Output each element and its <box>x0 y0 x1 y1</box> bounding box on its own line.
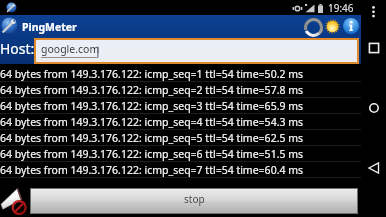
button[interactable]: Mute <box>1 186 27 212</box>
staticText: google.com <box>41 42 100 56</box>
button[interactable]: Recents <box>367 41 381 55</box>
button[interactable]: 64 bytes from 149.3.176.122: icmp_seq=7 … <box>0 162 361 177</box>
staticText: stop <box>184 192 205 206</box>
button[interactable]: 64 bytes from 149.3.176.122: icmp_seq=3 … <box>0 98 361 113</box>
button[interactable]: 64 bytes from 149.3.176.122: icmp_seq=6 … <box>0 146 361 161</box>
staticText: 64 bytes from 149.3.176.122: icmp_seq=4 … <box>0 115 304 129</box>
button[interactable]: 64 bytes from 149.3.176.122: icmp_seq=5 … <box>0 130 361 145</box>
staticText: 64 bytes from 149.3.176.122: icmp_seq=5 … <box>0 131 304 145</box>
staticText: 64 bytes from 149.3.176.122: icmp_seq=6 … <box>0 147 304 161</box>
button[interactable]: google.com <box>36 40 357 62</box>
staticText: 64 bytes from 149.3.176.122: icmp_seq=2 … <box>0 83 304 97</box>
button[interactable]: More options <box>367 4 380 17</box>
staticText: 64 bytes from 149.3.176.122: icmp_seq=3 … <box>0 99 304 113</box>
button[interactable]: 64 bytes from 149.3.176.122: icmp_seq=1 … <box>0 66 361 81</box>
button[interactable]: About <box>341 16 361 36</box>
staticText: 19:46 <box>328 1 354 15</box>
button[interactable]: stop <box>31 189 357 213</box>
button[interactable]: 64 bytes from 149.3.176.122: icmp_seq=2 … <box>0 82 361 97</box>
staticText: 64 bytes from 149.3.176.122: icmp_seq=1 … <box>0 67 304 81</box>
button[interactable]: 64 bytes from 149.3.176.122: icmp_seq=4 … <box>0 114 361 129</box>
staticText: 64 bytes from 149.3.176.122: icmp_seq=7 … <box>0 163 304 177</box>
button[interactable]: Back <box>367 161 381 175</box>
button[interactable]: Home <box>367 101 381 115</box>
button[interactable]: Settings <box>322 16 342 36</box>
staticText: Host: <box>0 39 35 58</box>
button[interactable]: Refresh <box>303 17 323 37</box>
staticText: PingMeter <box>22 20 77 34</box>
